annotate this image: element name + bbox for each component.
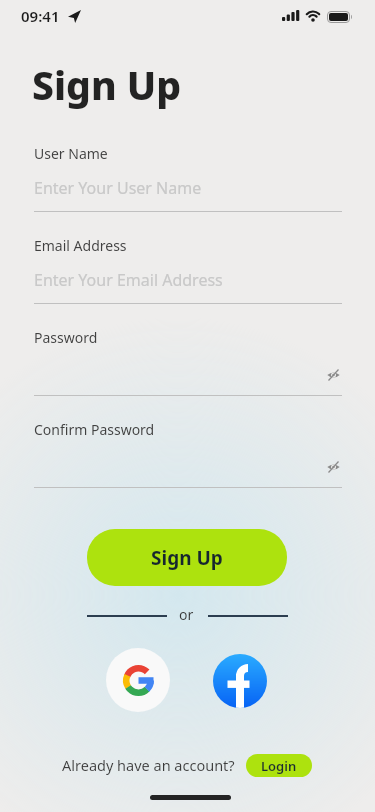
staticText: Enter Your User Name — [34, 177, 202, 199]
button[interactable] — [34, 173, 342, 213]
staticText: 09:41 — [21, 6, 60, 26]
staticText: Password — [34, 328, 98, 347]
button[interactable] — [106, 648, 170, 712]
staticText: Sign Up — [32, 58, 182, 111]
button[interactable]: Sign Up — [87, 529, 287, 586]
button[interactable]: Login — [246, 754, 312, 777]
staticText: Confirm Password — [34, 420, 155, 439]
staticText: Enter Your Email Address — [34, 269, 223, 291]
staticText: User Name — [34, 144, 108, 163]
staticText: or — [179, 605, 194, 624]
button[interactable] — [34, 357, 342, 397]
staticText: Sign Up — [151, 545, 223, 571]
staticText: Login — [261, 757, 297, 775]
button[interactable] — [34, 449, 342, 489]
staticText: Already have an account? — [62, 755, 235, 775]
button[interactable] — [213, 654, 267, 708]
staticText: Email Address — [34, 236, 127, 255]
button[interactable] — [34, 265, 342, 305]
